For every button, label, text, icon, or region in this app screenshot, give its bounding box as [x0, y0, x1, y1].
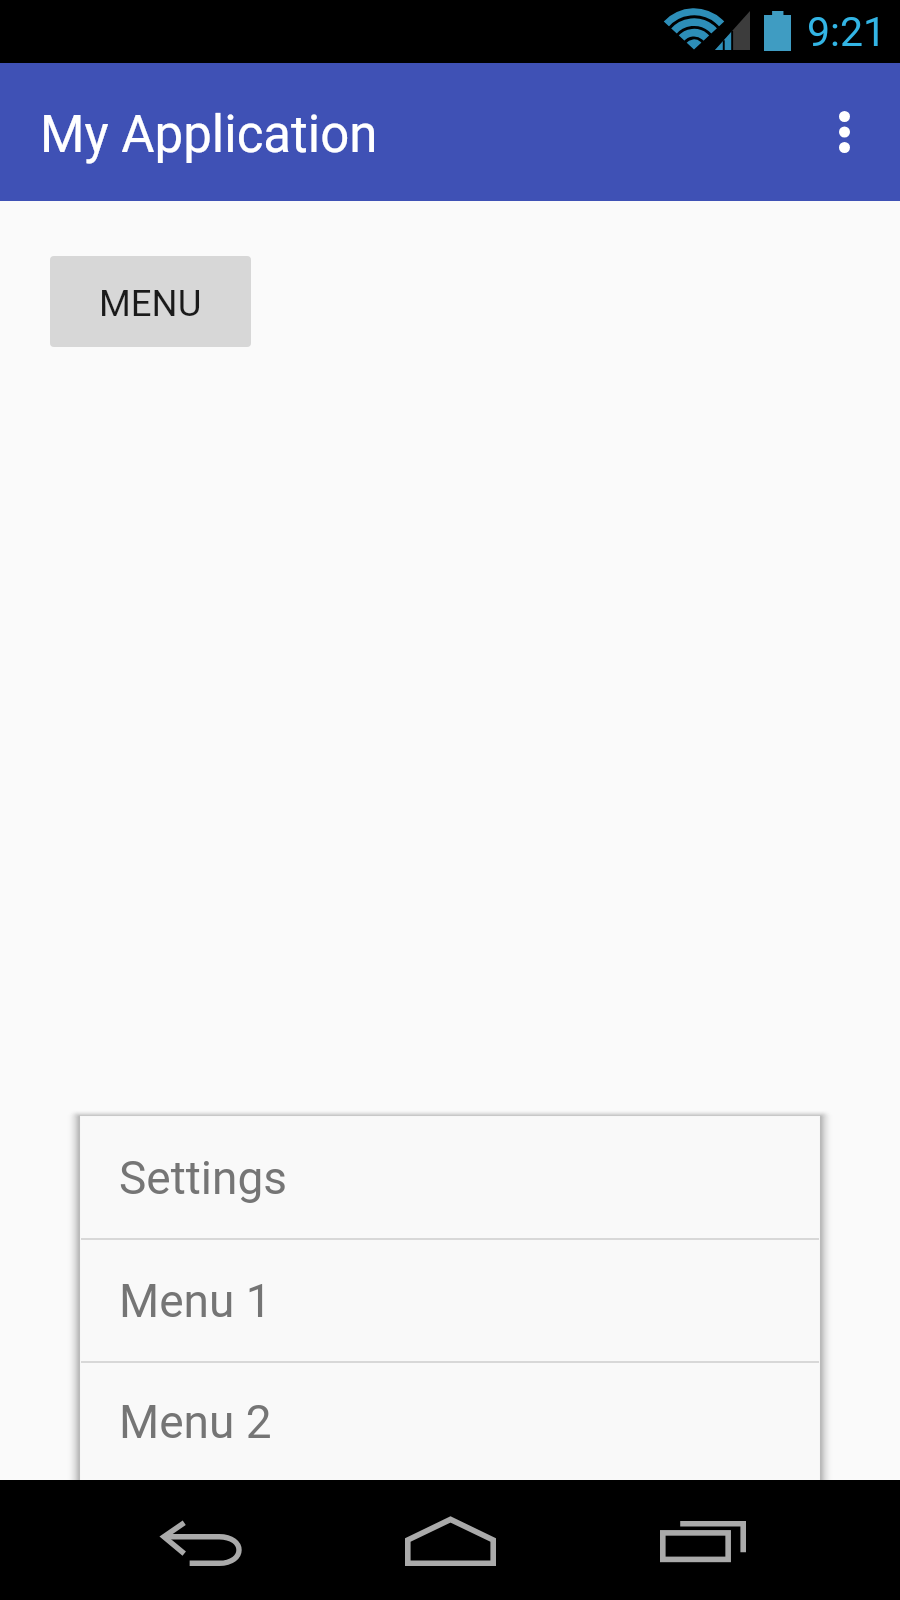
- button[interactable]: More options: [788, 63, 900, 201]
- button[interactable]: MENU: [50, 256, 251, 347]
- button[interactable]: Recent apps: [600, 1480, 900, 1600]
- button[interactable]: Menu 1: [81, 1240, 819, 1361]
- button[interactable]: Back: [0, 1480, 300, 1600]
- staticText: Settings: [119, 1151, 287, 1205]
- staticText: MENU: [99, 282, 202, 325]
- button[interactable]: Settings: [81, 1117, 819, 1238]
- staticText: Menu 1: [119, 1274, 272, 1328]
- staticText: Menu 2: [119, 1395, 272, 1449]
- staticText: 9:21: [807, 8, 887, 56]
- button[interactable]: Menu 2: [81, 1363, 819, 1480]
- staticText: My Application: [40, 105, 378, 165]
- button[interactable]: Home: [300, 1480, 600, 1600]
